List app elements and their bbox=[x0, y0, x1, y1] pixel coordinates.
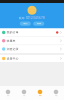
staticText: 分类 bbox=[23, 95, 25, 96]
button[interactable]: 我的关注 bbox=[20, 21, 31, 26]
staticText: 设置中心 bbox=[7, 57, 19, 60]
button[interactable]: 首页 bbox=[0, 86, 16, 100]
staticText: 购物车 bbox=[38, 95, 41, 96]
button[interactable]: 收藏夹 bbox=[0, 37, 64, 45]
button[interactable]: 我的 bbox=[48, 86, 64, 100]
button[interactable]: 我的收藏 bbox=[33, 21, 44, 26]
staticText: 我的收藏 bbox=[37, 23, 41, 24]
staticText: 收藏夹 bbox=[7, 39, 16, 42]
button[interactable]: 我的订单 bbox=[0, 28, 64, 36]
staticText: 我的关注 bbox=[23, 23, 27, 24]
button[interactable]: 购物车 bbox=[32, 86, 48, 100]
staticText: 浏览记录 bbox=[7, 47, 19, 51]
staticText: 我的订单 bbox=[7, 31, 19, 34]
staticText: 昵称 ID12345678 bbox=[19, 16, 45, 20]
button[interactable]: 分类 bbox=[16, 86, 32, 100]
button[interactable]: 设置中心 bbox=[0, 55, 64, 62]
button[interactable]: 浏览记录 bbox=[0, 45, 64, 53]
